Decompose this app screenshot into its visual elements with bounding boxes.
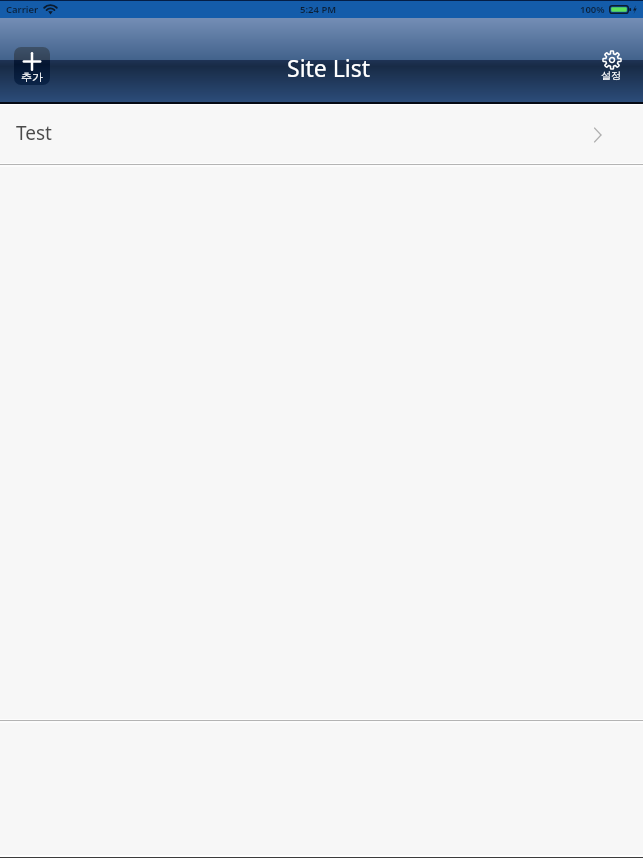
button[interactable]: Test	[0, 105, 643, 163]
staticText: 5:24 PM	[300, 3, 337, 16]
staticText: Carrier	[6, 3, 39, 16]
staticText: Site List	[287, 52, 371, 83]
staticText: 설정	[601, 69, 621, 82]
staticText: 추가	[21, 70, 43, 84]
staticText: Test	[16, 120, 52, 146]
staticText: 100%	[580, 3, 605, 16]
button[interactable]: Settings	[591, 45, 630, 86]
button[interactable]: Add site	[14, 47, 50, 85]
